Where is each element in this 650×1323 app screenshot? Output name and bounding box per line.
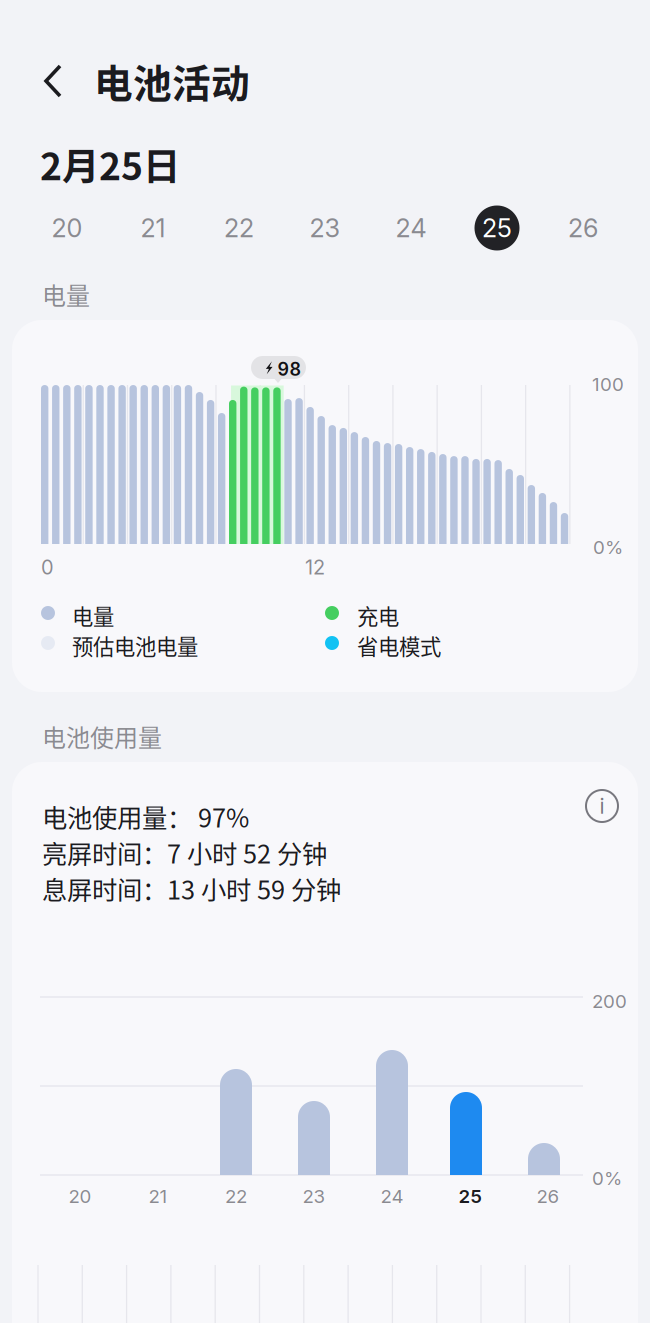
staticText: 0 <box>41 555 54 579</box>
button[interactable]: 26 <box>540 198 626 258</box>
staticText: 电量 <box>42 277 90 312</box>
button[interactable]: Info <box>584 788 620 824</box>
staticText: 电池活动 <box>94 53 250 109</box>
staticText: 200 <box>592 990 627 1013</box>
button[interactable]: 21 <box>110 198 196 258</box>
staticText: 22 <box>225 1185 247 1208</box>
button[interactable]: 20 <box>24 198 110 258</box>
staticText: 电池使用量： 97% <box>42 798 249 835</box>
staticText: 25 <box>482 213 512 243</box>
staticText: 息屏时间：13 小时 59 分钟 <box>42 870 341 907</box>
staticText: 26 <box>536 1185 559 1208</box>
staticText: 20 <box>51 213 82 243</box>
staticText: 21 <box>148 1185 167 1208</box>
staticText: 98 <box>277 358 301 380</box>
staticText: 电池使用量 <box>42 719 162 754</box>
staticText: 24 <box>395 213 426 243</box>
staticText: 省电模式 <box>357 630 441 661</box>
staticText: 亮屏时间：7 小时 52 分钟 <box>42 834 327 871</box>
staticText: 23 <box>309 213 340 243</box>
staticText: 100 <box>592 373 624 396</box>
staticText: 电量 <box>72 600 114 631</box>
staticText: 12 <box>305 555 325 579</box>
button[interactable]: 24 <box>368 198 454 258</box>
staticText: 23 <box>302 1185 325 1208</box>
button[interactable]: 25 <box>454 198 540 258</box>
staticText: i <box>599 793 604 819</box>
staticText: 24 <box>380 1185 403 1208</box>
staticText: 0% <box>593 536 623 559</box>
staticText: 充电 <box>357 600 399 631</box>
staticText: 2月25日 <box>40 137 180 191</box>
staticText: 25 <box>458 1185 481 1208</box>
staticText: 21 <box>140 213 165 243</box>
button[interactable]: 22 <box>196 198 282 258</box>
staticText: 0% <box>592 1167 622 1190</box>
staticText: 22 <box>224 213 254 243</box>
staticText: 26 <box>568 213 598 243</box>
staticText: 预估电池电量 <box>72 630 198 661</box>
button[interactable]: 23 <box>282 198 368 258</box>
button[interactable]: Back <box>40 60 66 102</box>
staticText: 20 <box>68 1185 91 1208</box>
